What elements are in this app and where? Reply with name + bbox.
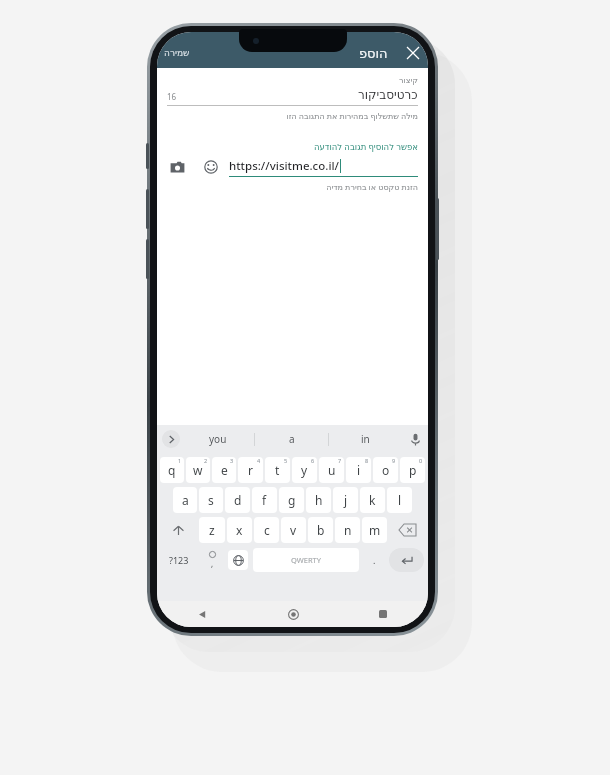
button[interactable]: Voice input: [402, 426, 428, 452]
staticText: 0: [419, 457, 423, 464]
staticText: g: [288, 492, 296, 508]
staticText: a: [289, 432, 295, 446]
staticText: 8: [365, 457, 369, 464]
staticText: w: [193, 462, 203, 478]
button[interactable]: QWERTY: [253, 548, 359, 572]
button[interactable]: Keyboard function: [389, 517, 425, 543]
button[interactable]: q: [160, 457, 184, 483]
button[interactable]: h: [306, 487, 331, 513]
staticText: 3: [230, 457, 234, 464]
button[interactable]: Back: [157, 601, 248, 627]
staticText: c: [264, 522, 270, 538]
button[interactable]: t: [265, 457, 290, 483]
staticText: 2: [204, 457, 208, 464]
button[interactable]: https://visitme.co.il/: [229, 158, 418, 177]
staticText: 6: [311, 457, 315, 464]
button[interactable]: Close: [398, 38, 428, 68]
button[interactable]: j: [333, 487, 358, 513]
staticText: p: [409, 462, 417, 478]
button[interactable]: g: [279, 487, 304, 513]
staticText: כרטיסביקור: [358, 88, 418, 102]
staticText: הזנת טקסט או בחירת מדיה: [167, 181, 418, 192]
staticText: 4: [257, 457, 261, 464]
button[interactable]: x: [227, 517, 252, 543]
staticText: o: [382, 462, 390, 478]
staticText: n: [344, 522, 352, 538]
button[interactable]: שמירה: [164, 48, 190, 58]
button[interactable]: c: [254, 517, 279, 543]
button[interactable]: z: [199, 517, 225, 543]
button[interactable]: a: [255, 425, 328, 453]
staticText: 9: [392, 457, 396, 464]
staticText: e: [221, 462, 228, 478]
button[interactable]: ?123: [161, 547, 197, 573]
button[interactable]: Emoji and comma: [201, 547, 223, 573]
button[interactable]: v: [281, 517, 306, 543]
staticText: t: [275, 462, 280, 478]
button[interactable]: l: [387, 487, 412, 513]
button[interactable]: you: [182, 425, 254, 453]
staticText: q: [168, 462, 176, 478]
staticText: 5: [284, 457, 288, 464]
button[interactable]: Change language: [227, 547, 249, 573]
button[interactable]: Emoji: [201, 157, 221, 177]
staticText: you: [209, 432, 227, 446]
button[interactable]: 16: [167, 88, 418, 102]
button[interactable]: Add photo: [167, 157, 187, 177]
staticText: b: [317, 522, 325, 538]
staticText: הוספ: [359, 46, 388, 61]
button[interactable]: i: [346, 457, 371, 483]
staticText: j: [344, 492, 348, 508]
staticText: d: [234, 492, 242, 508]
staticText: k: [369, 492, 376, 508]
button[interactable]: m: [362, 517, 387, 543]
staticText: מילה שתשלוף במהירות את התגובה הזו: [167, 110, 418, 121]
button[interactable]: d: [225, 487, 250, 513]
button[interactable]: e: [212, 457, 236, 483]
staticText: r: [248, 462, 253, 478]
button[interactable]: Home: [248, 601, 338, 627]
staticText: s: [208, 492, 214, 508]
staticText: ,: [211, 558, 214, 569]
button[interactable]: in: [329, 425, 402, 453]
staticText: 7: [338, 457, 342, 464]
button[interactable]: o: [373, 457, 398, 483]
button[interactable]: Keyboard function: [160, 517, 197, 543]
staticText: f: [262, 492, 267, 508]
staticText: a: [182, 492, 189, 508]
button[interactable]: y: [292, 457, 317, 483]
button[interactable]: p: [400, 457, 425, 483]
staticText: l: [398, 492, 402, 508]
staticText: https://visitme.co.il/: [229, 158, 340, 174]
button[interactable]: Expand suggestions: [160, 428, 182, 450]
staticText: 1: [178, 457, 182, 464]
button[interactable]: u: [319, 457, 344, 483]
button[interactable]: Enter: [389, 547, 424, 573]
staticText: .: [373, 554, 376, 566]
staticText: u: [328, 462, 336, 478]
staticText: h: [315, 492, 323, 508]
button[interactable]: f: [252, 487, 277, 513]
button[interactable]: n: [335, 517, 360, 543]
staticText: אפשר להוסיף תגובה להודעה: [167, 141, 418, 153]
button[interactable]: Recent apps: [338, 601, 428, 627]
button[interactable]: a: [173, 487, 197, 513]
staticText: ?123: [169, 554, 189, 566]
button[interactable]: s: [199, 487, 223, 513]
button[interactable]: w: [186, 457, 210, 483]
staticText: in: [361, 432, 370, 446]
button[interactable]: b: [308, 517, 333, 543]
staticText: x: [236, 522, 243, 538]
button[interactable]: r: [238, 457, 263, 483]
staticText: QWERTY: [291, 555, 322, 565]
staticText: i: [357, 462, 361, 478]
staticText: z: [209, 522, 215, 538]
button[interactable]: .: [363, 547, 385, 573]
button[interactable]: k: [360, 487, 385, 513]
staticText: v: [290, 522, 297, 538]
staticText: y: [301, 462, 308, 478]
staticText: 16: [167, 91, 177, 102]
staticText: m: [369, 522, 381, 538]
staticText: קיצור: [167, 76, 418, 85]
